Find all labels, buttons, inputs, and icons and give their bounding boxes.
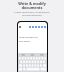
staticText: Create documents, spreadsheets and prese… [14, 11, 50, 17]
staticText: your device. [19, 40, 31, 43]
staticText: Write & modify documents [18, 1, 46, 10]
staticText: Write documents on [19, 36, 39, 39]
